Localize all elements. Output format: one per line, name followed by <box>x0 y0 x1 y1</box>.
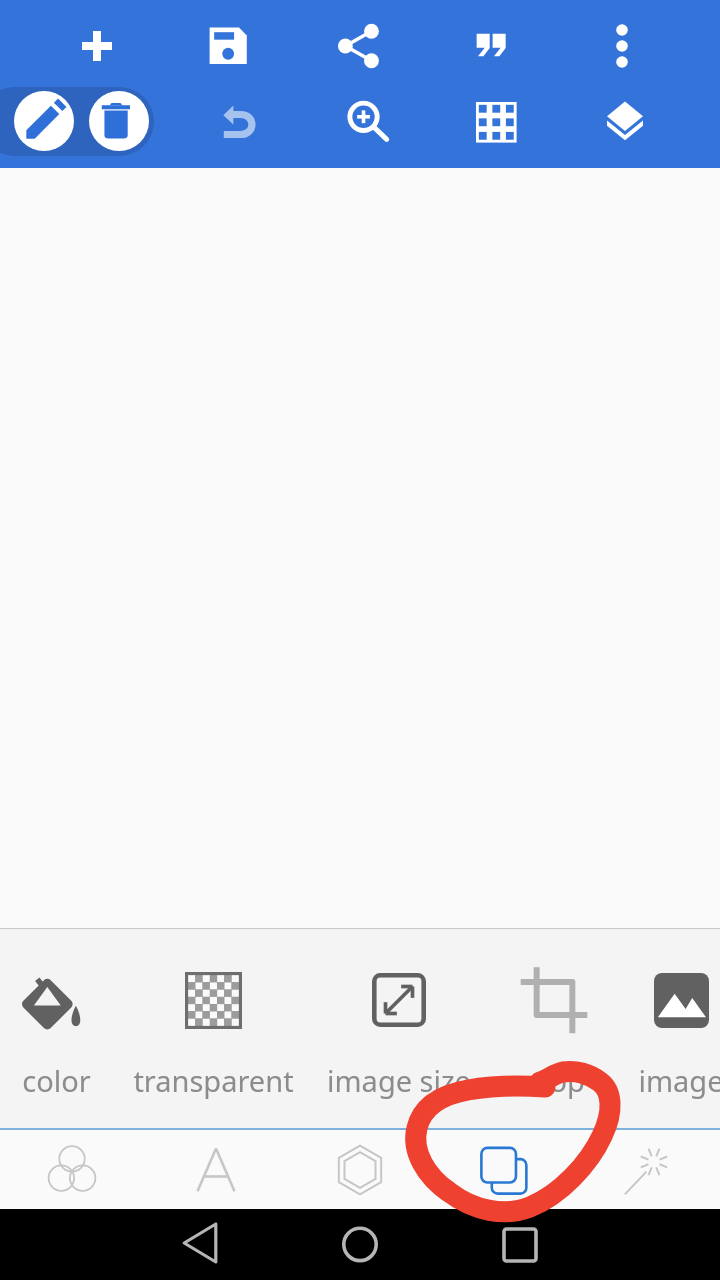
staticText: image <box>638 1061 720 1100</box>
button[interactable]: Layers <box>432 1130 576 1209</box>
button[interactable]: Quote <box>461 17 519 75</box>
button[interactable]: Add <box>68 17 126 75</box>
button[interactable]: Back <box>182 1223 222 1263</box>
button[interactable]: color <box>0 929 166 1128</box>
button[interactable]: Effects <box>576 1130 720 1209</box>
button[interactable]: Undo <box>209 93 267 151</box>
button[interactable]: Blend modes <box>0 1130 144 1209</box>
staticText: transparent <box>133 1061 294 1100</box>
button[interactable]: Save <box>199 17 257 75</box>
button[interactable]: Recents <box>500 1223 540 1263</box>
button[interactable]: Text <box>144 1130 288 1209</box>
button[interactable]: Layers <box>596 93 654 151</box>
staticText: crop <box>524 1061 585 1100</box>
button[interactable]: Share <box>330 17 388 75</box>
button[interactable]: transparent <box>103 929 323 1128</box>
button[interactable]: More options <box>593 17 651 75</box>
button[interactable]: crop <box>444 929 664 1128</box>
button[interactable]: Home <box>340 1223 380 1263</box>
staticText: color <box>22 1061 91 1100</box>
button[interactable]: Zoom <box>338 93 396 151</box>
button[interactable]: Erase <box>89 91 149 151</box>
button[interactable]: image size <box>289 929 509 1128</box>
staticText: image size <box>327 1061 471 1100</box>
button[interactable]: Shapes <box>288 1130 432 1209</box>
button[interactable]: Grid <box>467 93 525 151</box>
button[interactable]: Brush <box>14 91 74 151</box>
button[interactable]: image <box>571 929 720 1128</box>
